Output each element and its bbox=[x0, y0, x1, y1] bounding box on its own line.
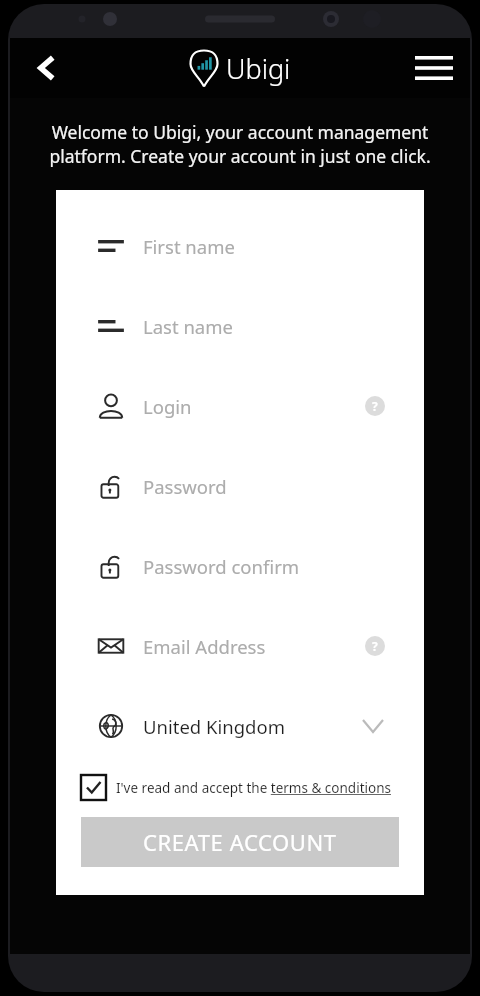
staticText: United Kingdom bbox=[143, 714, 285, 739]
staticText: Last name bbox=[143, 314, 233, 339]
button[interactable]: Password confirm bbox=[81, 538, 399, 594]
staticText: Password confirm bbox=[143, 554, 300, 579]
staticText: ? bbox=[372, 638, 378, 654]
staticText: Email Address bbox=[143, 634, 266, 659]
staticText: CREATE ACCOUNT bbox=[143, 827, 337, 857]
button[interactable]: Last name bbox=[81, 298, 399, 354]
button[interactable]: Help about Login bbox=[365, 396, 385, 416]
staticText: Welcome to Ubigi, your account managemen… bbox=[40, 120, 440, 168]
button[interactable]: I've read and accept the terms & conditi… bbox=[81, 775, 399, 800]
staticText: ? bbox=[372, 398, 378, 414]
staticText: Ubigi bbox=[226, 50, 291, 87]
staticText: Password bbox=[143, 474, 227, 499]
button[interactable]: CREATE ACCOUNT bbox=[81, 817, 399, 867]
button[interactable]: Help about Email Address bbox=[365, 636, 385, 656]
staticText: I've read and accept the terms & conditi… bbox=[116, 779, 391, 797]
button[interactable]: Menu bbox=[410, 44, 458, 92]
staticText: Login bbox=[143, 394, 192, 419]
button[interactable]: United Kingdom bbox=[81, 698, 399, 754]
button[interactable]: First name bbox=[81, 218, 399, 274]
button[interactable]: Password bbox=[81, 458, 399, 514]
button[interactable]: Email Address bbox=[81, 618, 399, 674]
staticText: First name bbox=[143, 234, 235, 259]
button[interactable]: Login bbox=[81, 378, 399, 434]
button[interactable]: Back bbox=[24, 45, 70, 91]
